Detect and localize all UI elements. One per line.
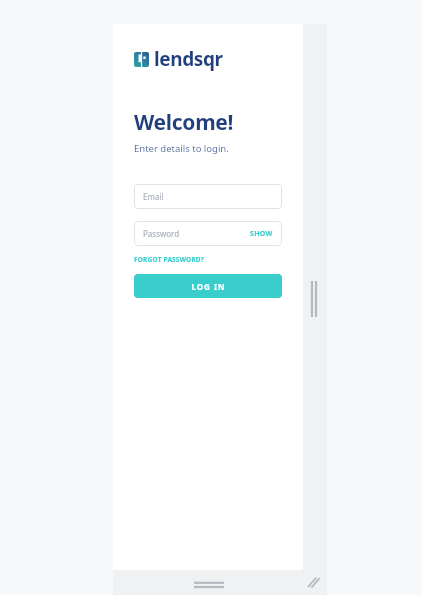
- button[interactable]: Email: [134, 184, 282, 209]
- staticText: Welcome!: [134, 108, 234, 137]
- staticText: lendsqr: [154, 46, 223, 72]
- staticText: FORGOT PASSWORD?: [134, 255, 205, 264]
- button[interactable]: LOG IN: [134, 274, 282, 298]
- staticText: LOG IN: [191, 281, 226, 292]
- button[interactable]: Password: [134, 221, 282, 246]
- button[interactable]: Resize: [306, 575, 320, 589]
- button[interactable]: Resize horizontally: [308, 281, 320, 317]
- staticText: Password: [143, 228, 180, 239]
- button[interactable]: SHOW: [250, 229, 273, 239]
- button[interactable]: Lendsqr logo: [134, 46, 223, 72]
- staticText: Enter details to login.: [134, 142, 229, 155]
- button[interactable]: FORGOT PASSWORD?: [134, 255, 205, 264]
- staticText: Email: [143, 191, 164, 202]
- button[interactable]: Resize vertically: [194, 580, 224, 590]
